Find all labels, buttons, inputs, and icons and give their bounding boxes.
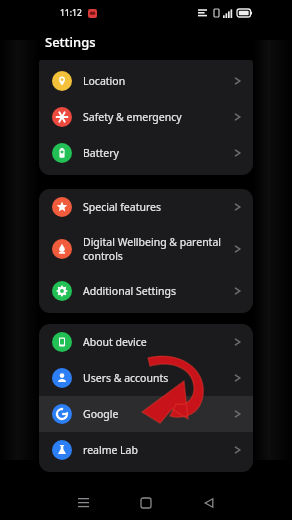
button[interactable]: Back xyxy=(196,490,222,516)
button[interactable]: Recents xyxy=(70,490,96,516)
staticText: Users & accounts xyxy=(83,371,228,385)
staticText: Safety & emergency xyxy=(83,110,228,124)
staticText: About device xyxy=(83,335,228,349)
staticText: Location xyxy=(83,74,228,88)
staticText: Google xyxy=(83,407,228,421)
button[interactable]: Users & accounts xyxy=(39,360,253,396)
staticText: Digital Wellbeing & parental controls xyxy=(83,235,228,263)
button[interactable]: About device xyxy=(39,324,253,360)
button[interactable]: Home xyxy=(133,490,159,516)
button[interactable]: realme Lab xyxy=(39,432,253,468)
staticText: Settings xyxy=(45,33,96,51)
staticText: 11:12 xyxy=(60,7,82,19)
button[interactable]: Safety & emergency xyxy=(39,99,253,135)
button[interactable]: Special features xyxy=(39,189,253,225)
staticText: realme Lab xyxy=(83,443,228,457)
staticText: Special features xyxy=(83,200,228,214)
staticText: Battery xyxy=(83,146,228,160)
button[interactable]: Google xyxy=(39,396,253,432)
button[interactable]: Battery xyxy=(39,135,253,171)
button[interactable]: Additional Settings xyxy=(39,273,253,309)
button[interactable]: Location xyxy=(39,63,253,99)
button[interactable]: Digital Wellbeing & parental controls xyxy=(39,225,253,273)
staticText: Additional Settings xyxy=(83,284,228,298)
